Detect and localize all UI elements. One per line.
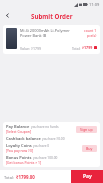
staticText: you have no funds bbox=[31, 125, 59, 129]
staticText: Loyalty Coins bbox=[6, 143, 32, 148]
staticText: you have 0 bbox=[33, 144, 50, 148]
staticText: Buy bbox=[86, 146, 93, 151]
staticText: Pay Balance bbox=[6, 124, 30, 129]
staticText: 11:09 bbox=[89, 2, 100, 7]
staticText: Sign up bbox=[80, 127, 93, 132]
staticText: Pay bbox=[83, 173, 92, 180]
staticText: Mi 4i 20000mAh Li-Polymer Power Bank (B bbox=[20, 28, 70, 38]
staticText: you have ₹0.00 bbox=[42, 137, 65, 141]
staticText: pcs(s) bbox=[87, 33, 97, 38]
staticText: [Get bonus Points × 1] bbox=[6, 160, 42, 165]
staticText: count 1 bbox=[84, 28, 97, 33]
staticText: [Select Coupon] bbox=[6, 129, 32, 134]
button[interactable]: Bonus Points bbox=[6, 155, 97, 165]
button[interactable]: Cashback balance bbox=[6, 136, 97, 141]
button[interactable]: Back bbox=[2, 10, 13, 21]
staticText: [You pay now ₹0] bbox=[6, 148, 34, 153]
staticText: you have 100.00 bbox=[33, 156, 58, 160]
button[interactable]: Mi 4i 20000mAh Li-Polymer Power Bank (B bbox=[3, 25, 100, 54]
staticText: Total: bbox=[4, 175, 15, 180]
button[interactable]: Loyalty Coins bbox=[6, 143, 97, 153]
button[interactable]: Pay bbox=[71, 170, 103, 183]
staticText: Bonus Points bbox=[6, 155, 32, 160]
staticText: ₹1799 bbox=[82, 45, 93, 50]
button[interactable]: Sign up bbox=[76, 126, 97, 133]
staticText: Submit Order bbox=[31, 12, 73, 20]
staticText: ₹1799.00 bbox=[16, 174, 35, 180]
staticText: Cashback balance bbox=[6, 136, 41, 141]
button[interactable]: Pay Balance bbox=[6, 124, 97, 134]
staticText: Total: bbox=[72, 46, 81, 50]
button[interactable]: Buy bbox=[82, 145, 97, 152]
staticText: Value: ₹1799 bbox=[20, 46, 41, 51]
